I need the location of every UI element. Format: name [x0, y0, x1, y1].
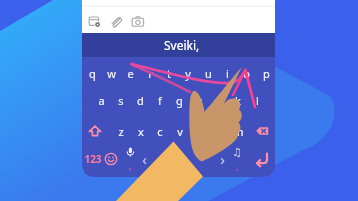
- button[interactable]: k: [228, 90, 248, 110]
- button[interactable]: z: [111, 121, 131, 141]
- button[interactable]: r: [140, 63, 160, 83]
- staticText: x: [138, 124, 144, 139]
- button[interactable]: w: [101, 63, 121, 83]
- button[interactable]: y: [178, 63, 198, 83]
- staticText: ,: [128, 156, 132, 172]
- button[interactable]: Stickers: [88, 15, 101, 28]
- staticText: g: [176, 93, 183, 108]
- button[interactable]: Attach file: [109, 15, 123, 29]
- button[interactable]: g: [169, 90, 189, 110]
- staticText: p: [263, 66, 270, 81]
- staticText: i: [226, 66, 229, 81]
- staticText: ›: [220, 149, 225, 169]
- button[interactable]: x: [131, 121, 151, 141]
- button[interactable]: Emoji: [104, 152, 118, 166]
- button[interactable]: Sveiki,: [137, 36, 227, 54]
- staticText: ♫: [232, 146, 242, 159]
- staticText: o: [243, 66, 250, 81]
- staticText: q: [89, 66, 96, 81]
- button[interactable]: Camera: [131, 15, 145, 28]
- button[interactable]: c: [150, 121, 170, 141]
- button[interactable]: a: [91, 90, 111, 110]
- button[interactable]: t: [159, 63, 179, 83]
- staticText: y: [185, 66, 191, 81]
- button[interactable]: j: [208, 90, 228, 110]
- staticText: .: [235, 158, 239, 174]
- staticText: c: [157, 124, 163, 139]
- button[interactable]: ,: [120, 154, 140, 174]
- button[interactable]: f: [150, 90, 170, 110]
- button[interactable]: q: [82, 63, 102, 83]
- button[interactable]: Backspace: [255, 125, 271, 137]
- button[interactable]: Voice input: [125, 146, 136, 158]
- staticText: h: [196, 93, 203, 108]
- staticText: ‹: [142, 149, 147, 169]
- button[interactable]: i: [217, 63, 237, 83]
- staticText: j: [217, 93, 220, 108]
- staticText: z: [118, 124, 124, 139]
- button[interactable]: m: [228, 121, 248, 141]
- button[interactable]: e: [120, 63, 140, 83]
- button[interactable]: o: [236, 63, 256, 83]
- button[interactable]: l: [247, 90, 267, 110]
- button[interactable]: 123: [83, 149, 103, 169]
- staticText: l: [256, 93, 259, 108]
- button[interactable]: u: [198, 63, 218, 83]
- staticText: w: [107, 66, 116, 81]
- button[interactable]: .: [227, 156, 247, 176]
- staticText: s: [118, 93, 124, 108]
- staticText: u: [205, 66, 212, 81]
- staticText: d: [137, 93, 144, 108]
- button[interactable]: v: [170, 121, 190, 141]
- button[interactable]: b: [189, 121, 209, 141]
- staticText: Sveiki,: [164, 37, 200, 53]
- staticText: 123: [84, 152, 102, 166]
- button[interactable]: ♫: [227, 142, 247, 162]
- staticText: v: [177, 124, 183, 139]
- staticText: e: [127, 66, 134, 81]
- button[interactable]: Enter: [252, 150, 272, 168]
- staticText: f: [158, 93, 162, 108]
- staticText: k: [235, 93, 241, 108]
- button[interactable]: ›: [212, 149, 232, 169]
- staticText: m: [233, 124, 244, 139]
- button[interactable]: ‹: [134, 149, 154, 169]
- button[interactable]: s: [111, 90, 131, 110]
- staticText: t: [167, 66, 171, 81]
- button[interactable]: d: [130, 90, 150, 110]
- button[interactable]: Shift: [87, 123, 103, 139]
- staticText: a: [98, 93, 105, 108]
- button[interactable]: p: [256, 63, 276, 83]
- button[interactable]: h: [189, 90, 209, 110]
- staticText: r: [148, 66, 153, 81]
